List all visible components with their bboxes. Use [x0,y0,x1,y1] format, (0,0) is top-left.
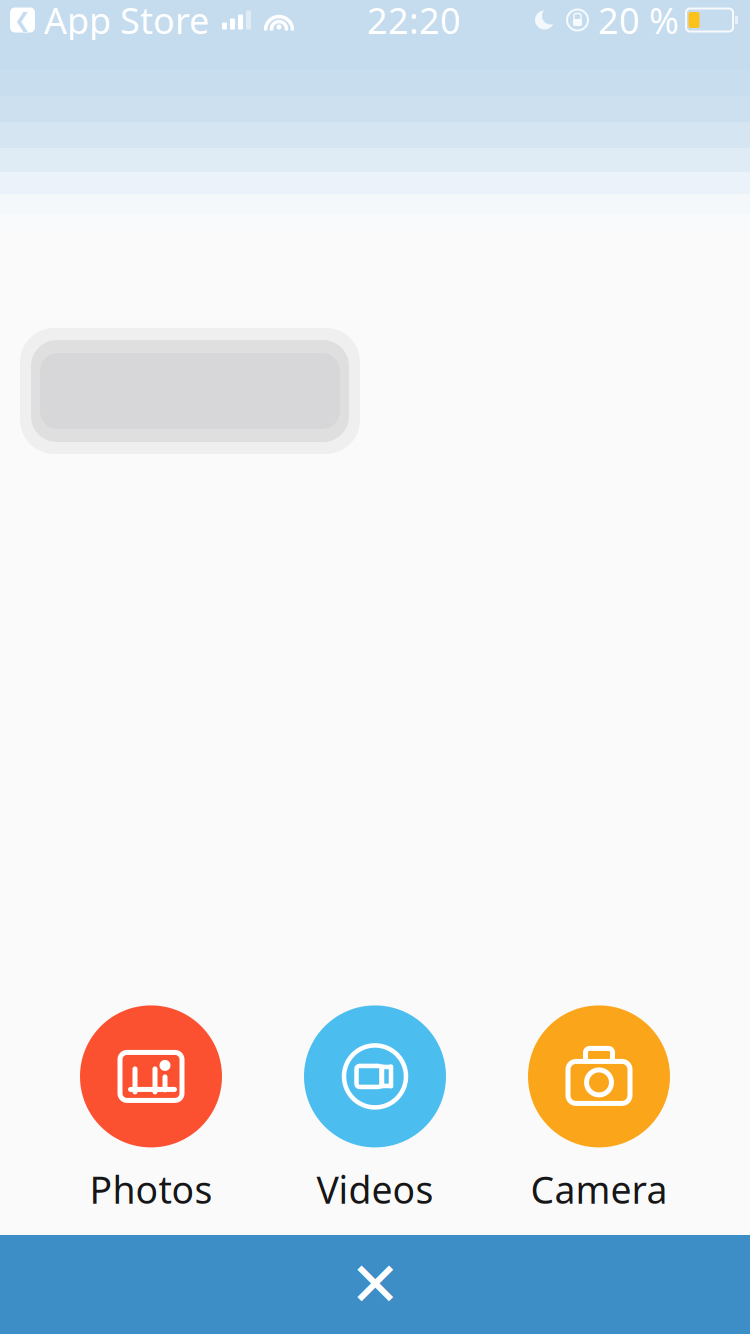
staticText: 20 % [598,0,679,44]
staticText: Videos [316,1164,433,1214]
staticText: ❮ [14,9,31,31]
staticText: 22:20 [367,0,461,44]
button[interactable]: Photos [52,1005,250,1214]
staticText: App Store [44,0,209,44]
button[interactable]: Close [0,1235,750,1334]
button[interactable]: Camera [500,1005,698,1214]
staticText: ✕ [349,1250,400,1319]
staticText: Camera [530,1164,667,1214]
button[interactable]: Back to App Store [10,0,209,44]
staticText: Photos [89,1164,212,1214]
button[interactable]: Videos [276,1005,474,1214]
